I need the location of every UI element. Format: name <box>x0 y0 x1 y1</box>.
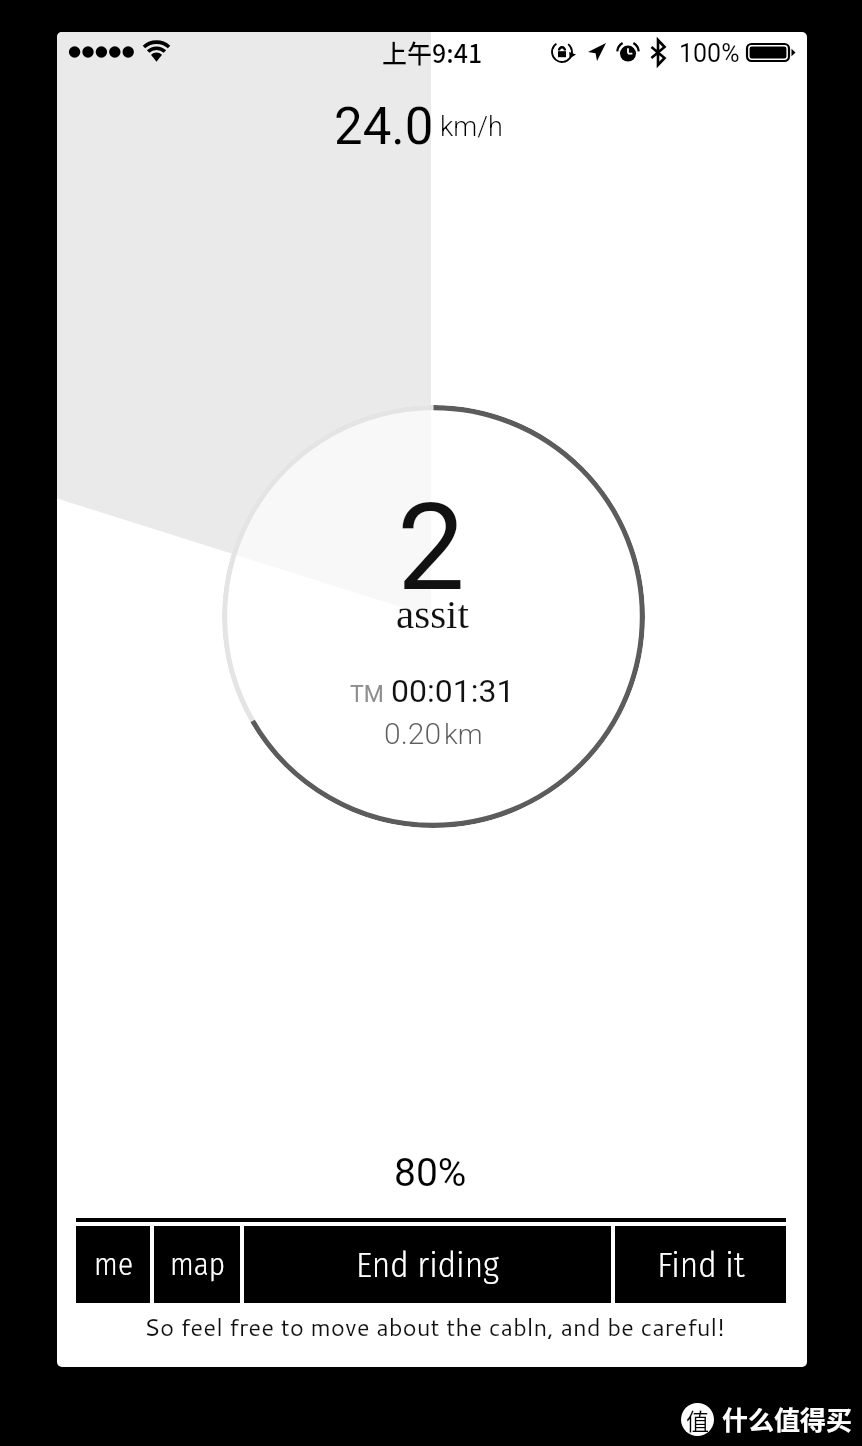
staticText: 24.0 <box>334 97 434 157</box>
staticText: 100% <box>679 39 740 68</box>
staticText: me <box>94 1246 133 1283</box>
staticText: 0.20 <box>384 716 442 751</box>
staticText: 2 <box>397 477 466 619</box>
staticText: Find it <box>657 1244 745 1286</box>
staticText: km <box>444 718 483 751</box>
staticText: TM <box>350 681 384 708</box>
staticText: km/h <box>440 111 503 143</box>
staticText: End riding <box>356 1244 499 1286</box>
staticText: 80% <box>394 1150 467 1196</box>
staticText: 上午9:41 <box>382 34 483 70</box>
staticText: assit <box>396 591 469 636</box>
staticText: 00:01:31 <box>391 672 515 710</box>
button[interactable]: map <box>154 1226 240 1303</box>
button[interactable]: me <box>76 1226 150 1303</box>
staticText: 什么值得买 <box>722 1400 853 1438</box>
button[interactable]: Assist level 2, trip 00:01:31, 0.20 km <box>222 405 645 828</box>
button[interactable]: Find it <box>615 1226 786 1303</box>
staticText: So feel free to move about the cabln, an… <box>144 1310 725 1344</box>
button[interactable]: End riding <box>244 1226 611 1303</box>
staticText: map <box>170 1246 225 1283</box>
staticText: 值 <box>686 1403 709 1436</box>
